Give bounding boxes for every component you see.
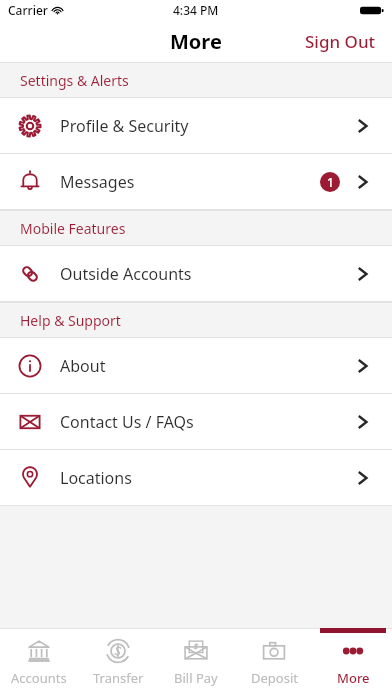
button[interactable]: Locations — [0, 450, 392, 506]
staticText: Locations — [60, 467, 132, 489]
staticText: About — [60, 355, 106, 377]
button[interactable]: Deposit — [235, 628, 313, 696]
staticText: Help & Support — [20, 311, 121, 330]
staticText: Bill Pay — [174, 669, 218, 687]
button[interactable]: Messages — [0, 154, 392, 210]
button[interactable]: About — [0, 338, 392, 394]
button[interactable]: More — [314, 628, 392, 696]
button[interactable]: Sign Out — [303, 26, 378, 57]
staticText: 4:34 PM — [173, 2, 219, 18]
staticText: Settings & Alerts — [20, 71, 129, 90]
staticText: More — [170, 28, 222, 55]
staticText: Mobile Features — [20, 219, 126, 238]
staticText: Sign Out — [305, 30, 376, 53]
button[interactable]: Bill Pay — [157, 628, 235, 696]
staticText: Outside Accounts — [60, 263, 192, 285]
staticText: More — [337, 669, 370, 687]
button[interactable]: Contact Us / FAQs — [0, 394, 392, 450]
button[interactable]: Transfer — [79, 628, 157, 696]
button[interactable]: Outside Accounts — [0, 246, 392, 302]
button[interactable]: Accounts — [0, 628, 78, 696]
staticText: Accounts — [11, 669, 67, 687]
staticText: Contact Us / FAQs — [60, 411, 194, 433]
staticText: Carrier — [8, 2, 48, 18]
staticText: Profile & Security — [60, 115, 189, 137]
button[interactable]: Profile & Security — [0, 98, 392, 154]
staticText: 1 — [327, 174, 334, 190]
staticText: Messages — [60, 171, 135, 193]
staticText: Transfer — [93, 669, 144, 687]
staticText: Deposit — [251, 669, 298, 687]
